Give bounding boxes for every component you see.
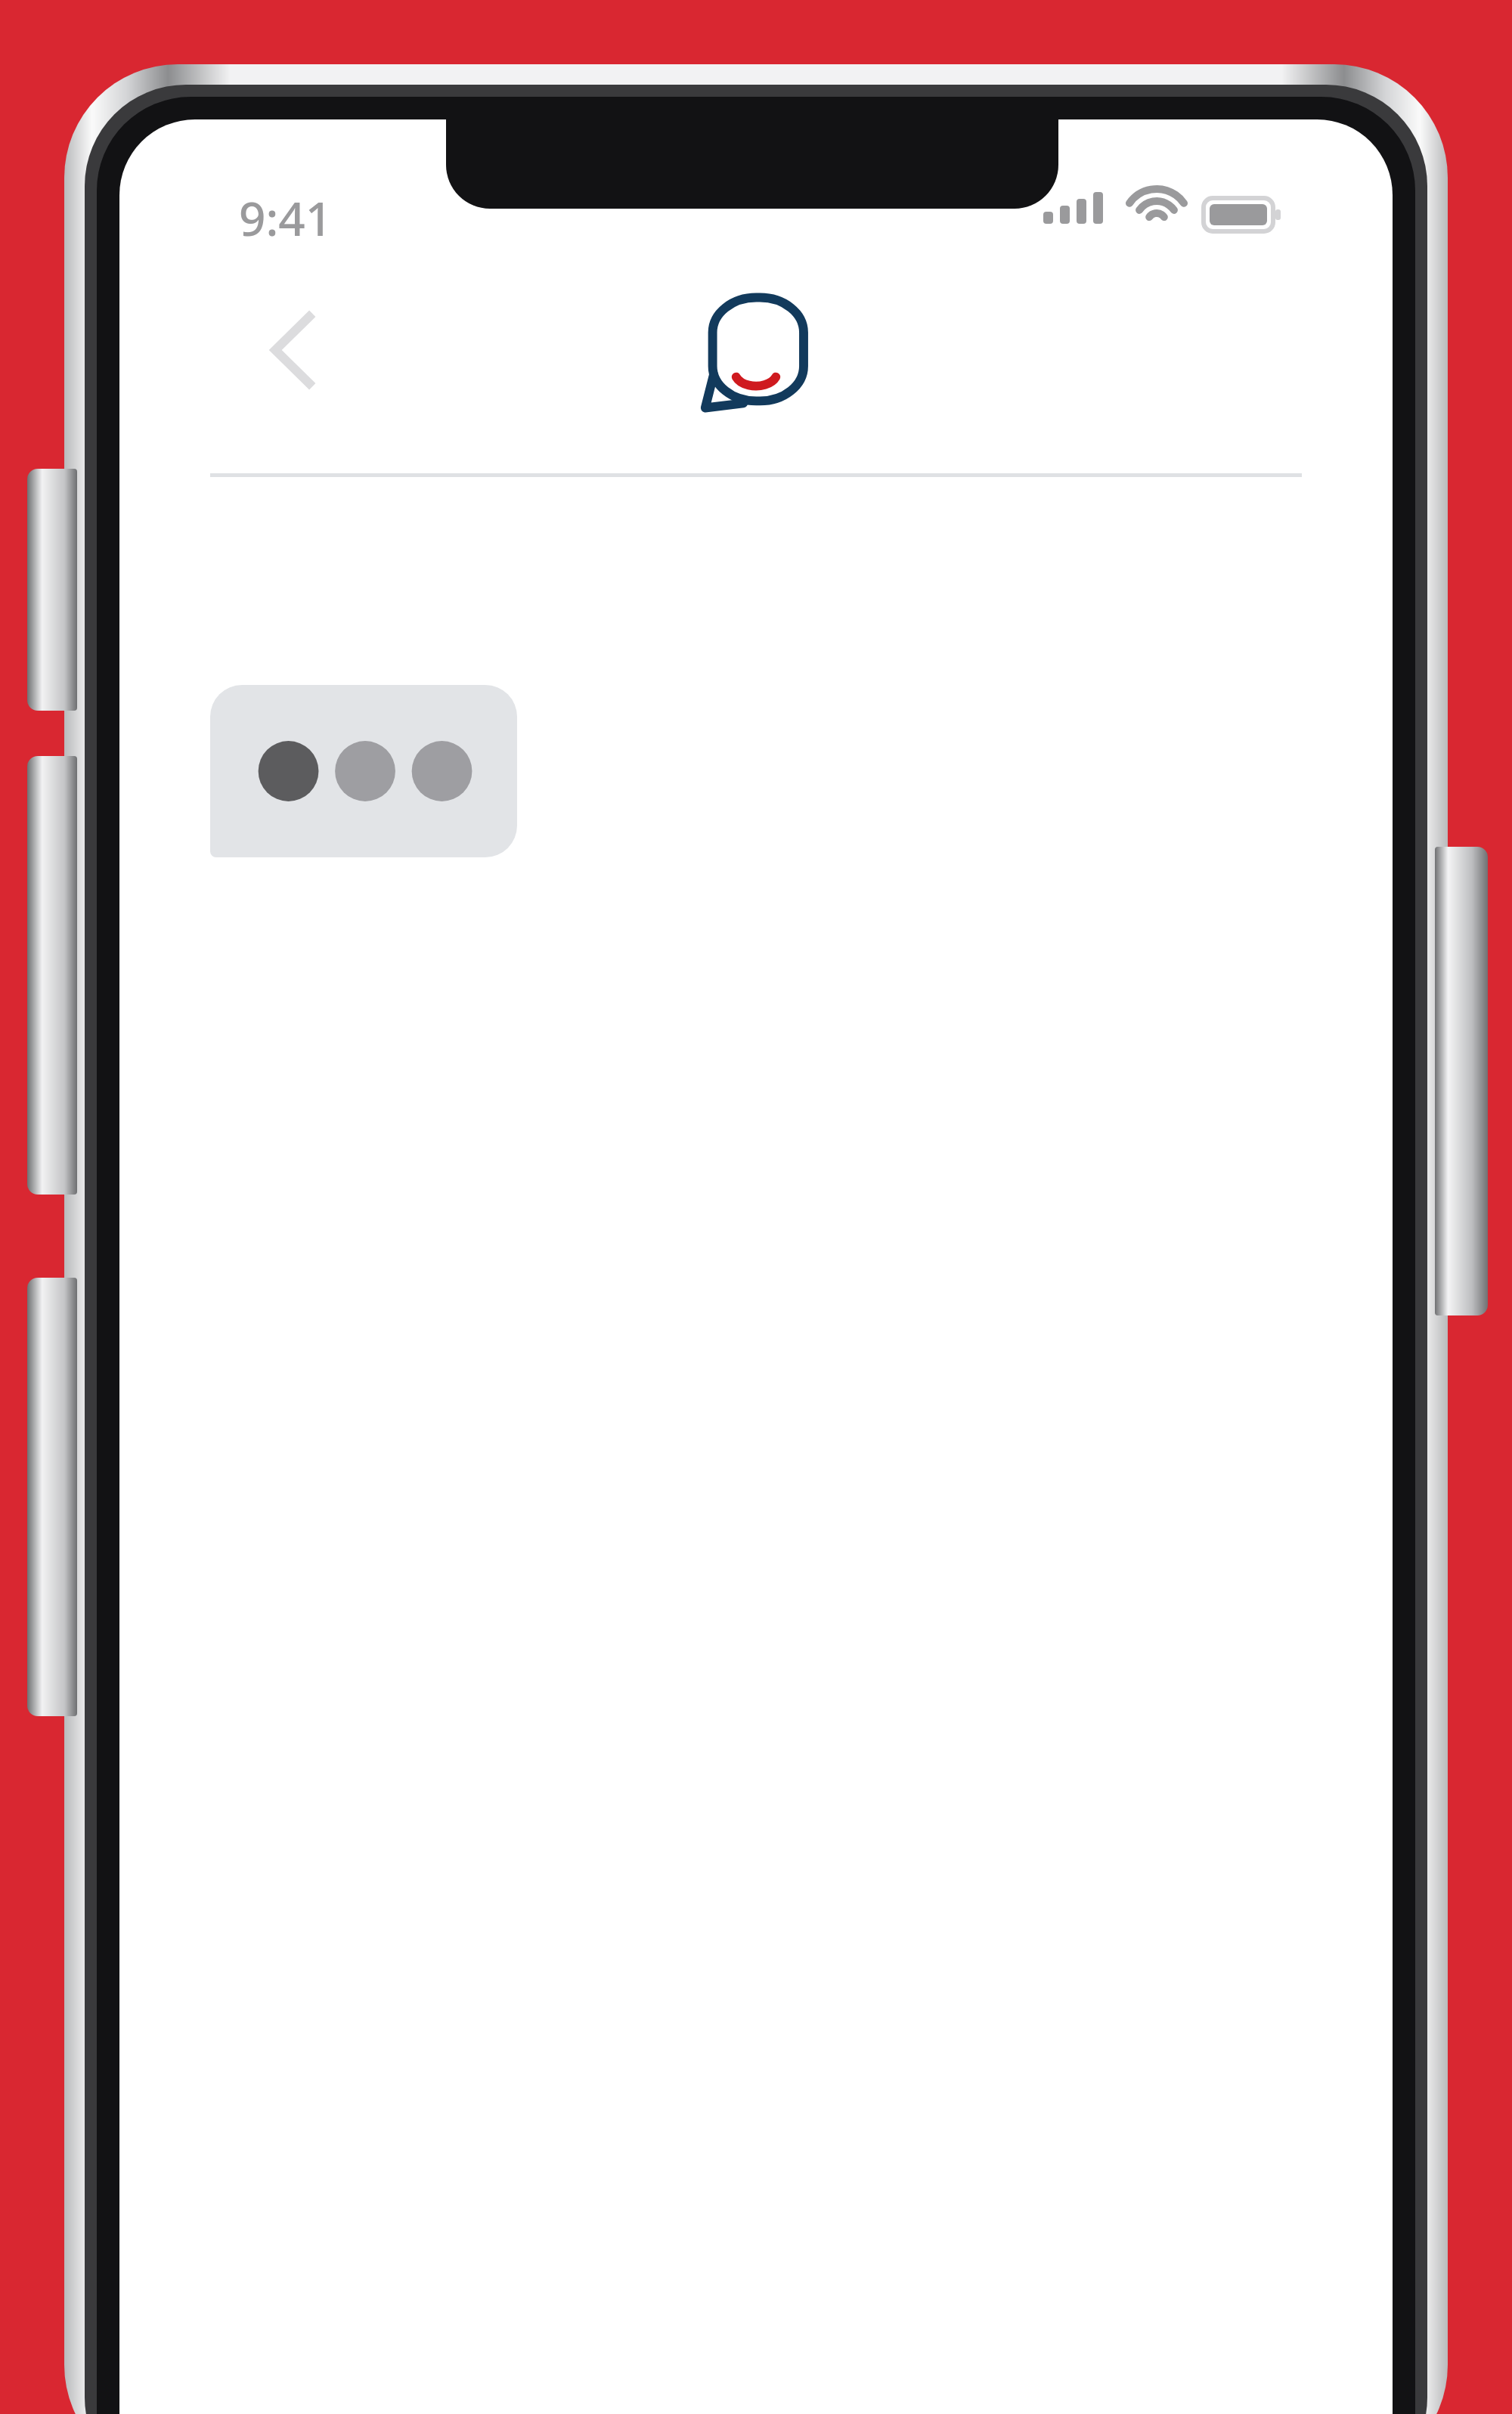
button[interactable]: Home: [696, 287, 816, 416]
button[interactable]: Typing indicator: [210, 685, 517, 857]
staticText: 9:41: [239, 186, 333, 239]
button[interactable]: Back: [233, 290, 354, 411]
